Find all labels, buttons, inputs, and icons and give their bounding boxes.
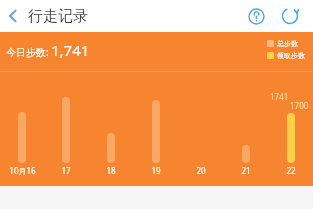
staticText: 20 [196,165,206,176]
button[interactable] [0,72,44,163]
staticText: 19 [151,165,161,176]
staticText: 1700 [290,100,309,111]
staticText: 1741 [270,91,289,102]
staticText: 18 [106,165,116,176]
staticText: 10月16 [9,165,36,176]
button[interactable]: Refresh [275,1,305,31]
staticText: 21 [241,165,251,176]
staticText: 总步数 [277,39,298,48]
staticText: 17 [61,165,71,176]
staticText: 22 [286,165,296,176]
staticText: 1,741 [51,40,90,60]
staticText: 行走记录 [28,7,88,26]
button[interactable] [88,72,133,163]
button[interactable] [133,72,178,163]
button[interactable]: Back [0,0,26,32]
button[interactable] [223,72,268,163]
button[interactable] [44,72,88,163]
staticText: 今日步数: [6,45,49,59]
staticText: 领取步数 [277,51,305,60]
button[interactable]: 1741 [268,72,313,163]
button[interactable]: Help [241,1,271,31]
